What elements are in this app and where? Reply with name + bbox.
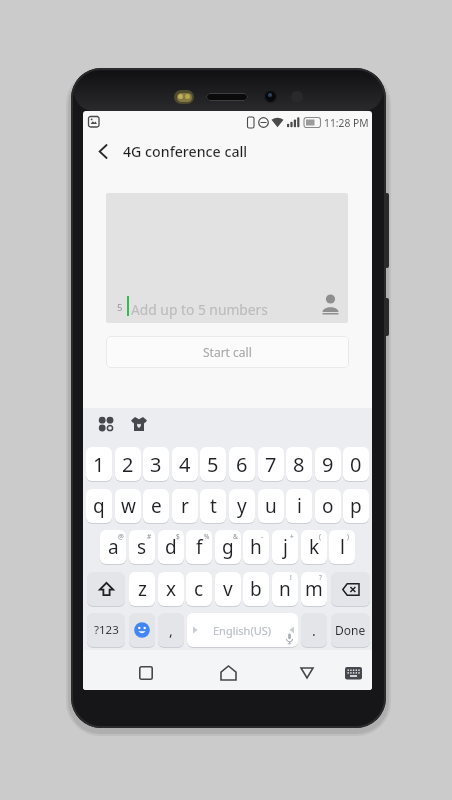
button[interactable] — [129, 613, 155, 647]
button[interactable]: English(US) — [187, 613, 298, 647]
button[interactable]: 5 — [200, 447, 226, 481]
button[interactable]: q — [86, 489, 112, 523]
staticText: k — [309, 534, 320, 560]
staticText: u — [265, 493, 277, 519]
staticText: 2 — [122, 451, 134, 478]
button[interactable]: g — [215, 530, 241, 564]
staticText: l — [340, 534, 345, 560]
button[interactable]: k — [301, 530, 327, 564]
button[interactable]: 7 — [258, 447, 284, 481]
button[interactable]: 3 — [143, 447, 169, 481]
staticText: g — [222, 534, 234, 560]
staticText: $ — [176, 532, 180, 541]
staticText: Start call — [203, 344, 252, 360]
button[interactable]: x — [158, 572, 184, 606]
staticText: a — [108, 534, 119, 560]
button[interactable]: d — [158, 530, 184, 564]
staticText: f — [196, 534, 203, 560]
button[interactable] — [214, 659, 242, 687]
staticText: n — [279, 576, 291, 602]
button[interactable]: v — [215, 572, 241, 606]
staticText: 11:28 PM — [324, 116, 369, 130]
staticText: v — [223, 576, 233, 602]
button[interactable]: l — [329, 530, 355, 564]
staticText: 7 — [265, 451, 277, 478]
button[interactable] — [132, 659, 160, 687]
button[interactable]: 8 — [286, 447, 312, 481]
button[interactable] — [87, 572, 125, 606]
staticText: b — [250, 576, 262, 602]
button[interactable]: i — [286, 489, 312, 523]
button[interactable] — [341, 661, 365, 685]
button[interactable]: t — [200, 489, 226, 523]
staticText: j — [283, 534, 288, 560]
staticText: 5 — [117, 301, 123, 314]
staticText: 6 — [236, 451, 248, 478]
staticText: w — [121, 493, 136, 519]
staticText: ! — [290, 573, 292, 582]
button[interactable]: 2 — [115, 447, 141, 481]
button[interactable] — [106, 193, 348, 323]
button[interactable]: z — [129, 572, 155, 606]
button[interactable]: Done — [331, 613, 370, 647]
staticText: 4G conference call — [123, 142, 248, 161]
staticText: . — [312, 621, 316, 640]
button[interactable]: h — [243, 530, 269, 564]
staticText: 3 — [150, 451, 162, 478]
staticText: q — [93, 493, 105, 519]
button[interactable]: c — [186, 572, 212, 606]
staticText: h — [250, 534, 262, 560]
button[interactable]: 4 — [172, 447, 198, 481]
staticText: m — [305, 576, 323, 602]
staticText: p — [350, 493, 362, 519]
staticText: - — [261, 532, 264, 541]
staticText: x — [166, 576, 177, 602]
staticText: c — [194, 576, 204, 602]
button[interactable]: y — [229, 489, 255, 523]
staticText: 8 — [293, 451, 305, 478]
staticText: ( — [319, 532, 321, 541]
button[interactable]: r — [172, 489, 198, 523]
button[interactable]: 6 — [229, 447, 255, 481]
button[interactable]: ?123 — [87, 613, 125, 647]
button[interactable] — [293, 659, 321, 687]
button[interactable]: o — [315, 489, 341, 523]
button[interactable]: e — [143, 489, 169, 523]
staticText: @ — [118, 532, 124, 541]
staticText: s — [137, 534, 147, 560]
button[interactable]: . — [301, 613, 327, 647]
button[interactable] — [331, 572, 370, 606]
button[interactable]: m — [301, 572, 327, 606]
staticText: ?123 — [94, 622, 119, 638]
staticText: i — [297, 493, 302, 519]
button[interactable]: n — [272, 572, 298, 606]
button[interactable]: f — [186, 530, 212, 564]
button[interactable]: a — [100, 530, 126, 564]
button[interactable]: Start call — [106, 336, 349, 368]
staticText: % — [204, 532, 210, 541]
staticText: & — [233, 532, 238, 541]
button[interactable]: j — [272, 530, 298, 564]
button[interactable]: p — [343, 489, 369, 523]
button[interactable] — [93, 411, 119, 437]
staticText: r — [181, 493, 189, 519]
staticText: English(US) — [213, 623, 272, 638]
button[interactable]: u — [258, 489, 284, 523]
button[interactable]: , — [158, 613, 184, 647]
staticText: 0 — [350, 451, 362, 478]
staticText: Done — [335, 622, 366, 638]
staticText: 5 — [207, 451, 219, 478]
button[interactable]: w — [115, 489, 141, 523]
button[interactable] — [83, 133, 372, 173]
staticText: , — [169, 621, 173, 640]
staticText: 9 — [322, 451, 334, 478]
button[interactable]: 9 — [315, 447, 341, 481]
staticText: ? — [319, 573, 322, 582]
button[interactable]: s — [129, 530, 155, 564]
staticText: + — [290, 532, 294, 541]
button[interactable]: 1 — [86, 447, 112, 481]
button[interactable]: b — [243, 572, 269, 606]
button[interactable] — [126, 411, 152, 437]
button[interactable]: 0 — [343, 447, 369, 481]
staticText: y — [237, 493, 247, 519]
